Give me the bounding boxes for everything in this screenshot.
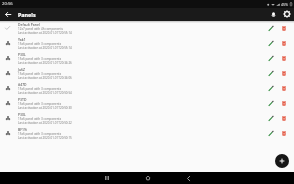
button[interactable]: Settings [280, 8, 293, 20]
staticText: Last activation at 2020-01-01T20:55:14 [18, 31, 72, 35]
staticText: 15x6 panel with 3 components [18, 117, 62, 121]
button[interactable]: Delete [277, 21, 290, 36]
button[interactable]: Back [0, 8, 16, 20]
staticText: 12x7 panel with 4h components [18, 27, 63, 31]
staticText: Yak1 [18, 37, 26, 42]
button[interactable]: Edit [264, 126, 277, 141]
staticText: P3XL [18, 112, 26, 117]
button[interactable]: Delete [277, 81, 290, 96]
button[interactable]: P3XL [0, 111, 294, 126]
button[interactable]: Edit [264, 111, 277, 126]
staticText: Last activation at 2020-01-01T20:55:14 [18, 46, 72, 50]
button[interactable]: Edit [264, 36, 277, 51]
button[interactable]: Delete [277, 36, 290, 51]
staticText: 45% [281, 2, 289, 7]
staticText: Last activation at 2020-01-01T20:50:30 [18, 106, 72, 110]
button[interactable]: Edit [264, 21, 277, 36]
button[interactable]: Delete [277, 126, 290, 141]
staticText: Last activation at 2020-01-01T20:34:06 [18, 76, 72, 80]
staticText: Last activation at 2020-01-01T20:50:54 [18, 91, 72, 95]
button[interactable]: Default Panel [0, 21, 294, 36]
staticText: 15x6 panel with 3 components [18, 57, 62, 61]
button[interactable]: Delete [277, 66, 290, 81]
staticText: BF19i [18, 127, 27, 132]
staticText: 15x6 panel with 3 components [18, 87, 62, 91]
button[interactable]: Account [267, 8, 280, 20]
button[interactable]: Delete [277, 96, 290, 111]
button[interactable]: P3TD [0, 96, 294, 111]
button[interactable]: Ju6Z [0, 66, 294, 81]
staticText: Default Panel [18, 22, 40, 27]
button[interactable]: #47D [0, 81, 294, 96]
button[interactable]: Delete [277, 51, 290, 66]
button[interactable]: Back [168, 172, 209, 184]
staticText: Ju6Z [18, 67, 25, 72]
button[interactable]: Edit [264, 66, 277, 81]
staticText: 15x6 panel with 3 components [18, 132, 62, 136]
button[interactable]: Edit [264, 81, 277, 96]
button[interactable]: BF19i [0, 126, 294, 141]
staticText: Last activation at 2020-01-01T20:34:26 [18, 61, 72, 65]
staticText: 15x6 panel with 3 components [18, 42, 62, 46]
staticText: Last activation at 2020-01-01T20:50:22 [18, 121, 72, 125]
staticText: Last activation at 2020-01-01T20:50:15 [18, 136, 72, 140]
button[interactable]: Edit [264, 96, 277, 111]
staticText: #47D [18, 82, 27, 87]
staticText: P3XL [18, 52, 26, 57]
button[interactable]: Edit [264, 51, 277, 66]
button[interactable]: Home [127, 172, 168, 184]
staticText: Panels [18, 11, 36, 18]
staticText: 20:56 [2, 1, 13, 7]
button[interactable]: Yak1 [0, 36, 294, 51]
staticText: P3TD [18, 97, 27, 102]
staticText: 15x6 panel with 3 components [18, 72, 62, 76]
button[interactable]: Recents [86, 172, 127, 184]
button[interactable]: Delete [277, 111, 290, 126]
staticText: 15x6 panel with 3 components [18, 102, 62, 106]
button[interactable]: P3XL [0, 51, 294, 66]
button[interactable]: Add panel [275, 154, 289, 168]
